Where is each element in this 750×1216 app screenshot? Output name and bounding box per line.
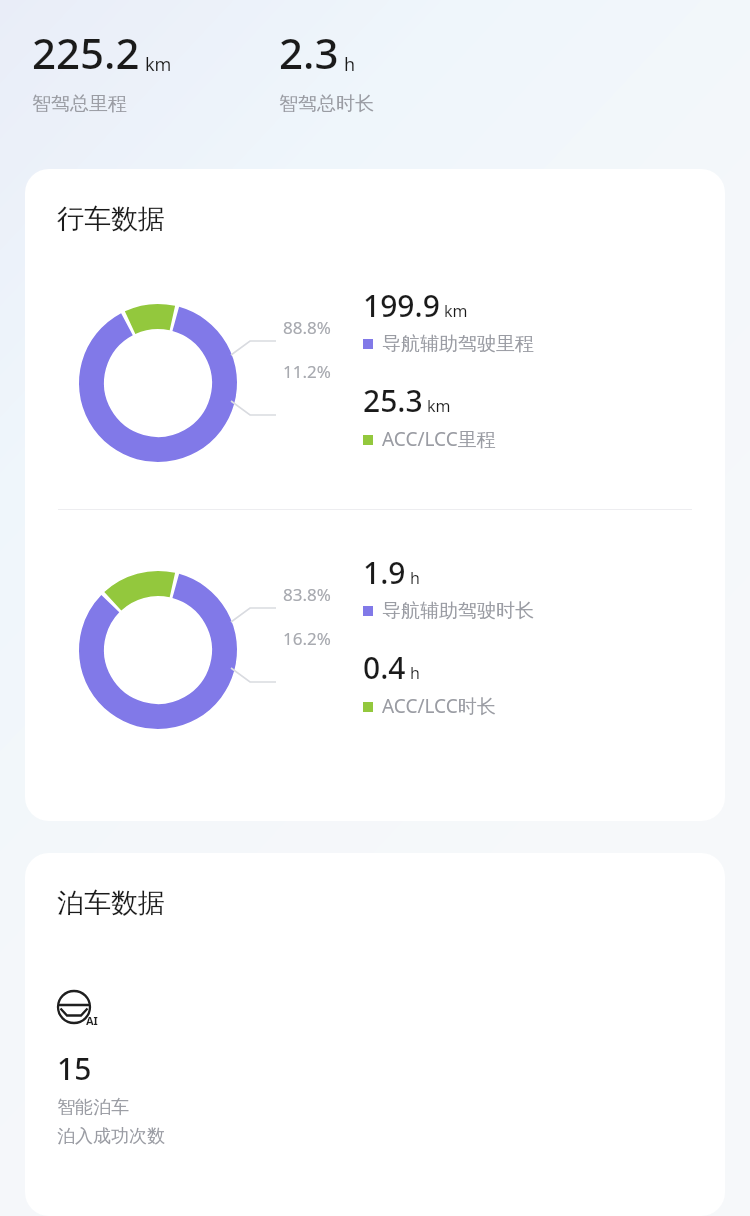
other: Smart parking <box>56 988 102 1030</box>
staticText: AI <box>86 1013 98 1028</box>
staticText: 88.8% <box>283 318 331 338</box>
staticText: h <box>344 54 356 75</box>
staticText: km <box>444 302 468 321</box>
staticText: 15 <box>57 1052 92 1087</box>
staticText: 泊车数据 <box>57 888 165 920</box>
staticText: km <box>145 54 172 75</box>
staticText: 225.2 <box>32 30 140 80</box>
staticText: 1.9 <box>363 556 406 591</box>
staticText: 16.2% <box>283 629 331 649</box>
staticText: 83.8% <box>283 585 331 605</box>
button[interactable]: 泊车数据 <box>25 853 725 1216</box>
staticText: 行车数据 <box>57 204 165 236</box>
button[interactable]: 行车数据 <box>25 169 725 821</box>
staticText: 25.3 <box>363 384 423 419</box>
staticText: ACC/LCC里程 <box>382 428 496 451</box>
staticText: h <box>410 569 420 588</box>
staticText: ACC/LCC时长 <box>382 695 496 718</box>
staticText: 199.9 <box>363 289 440 324</box>
staticText: h <box>410 664 420 683</box>
staticText: 导航辅助驾驶里程 <box>382 333 534 355</box>
staticText: 智能泊车 <box>57 1097 129 1118</box>
staticText: 智驾总里程 <box>32 93 127 115</box>
staticText: km <box>427 397 451 416</box>
staticText: 导航辅助驾驶时长 <box>382 600 534 622</box>
staticText: 2.3 <box>279 30 339 80</box>
staticText: 智驾总时长 <box>279 93 374 115</box>
staticText: 0.4 <box>363 651 406 686</box>
staticText: 11.2% <box>283 362 331 382</box>
staticText: 泊入成功次数 <box>57 1126 165 1147</box>
